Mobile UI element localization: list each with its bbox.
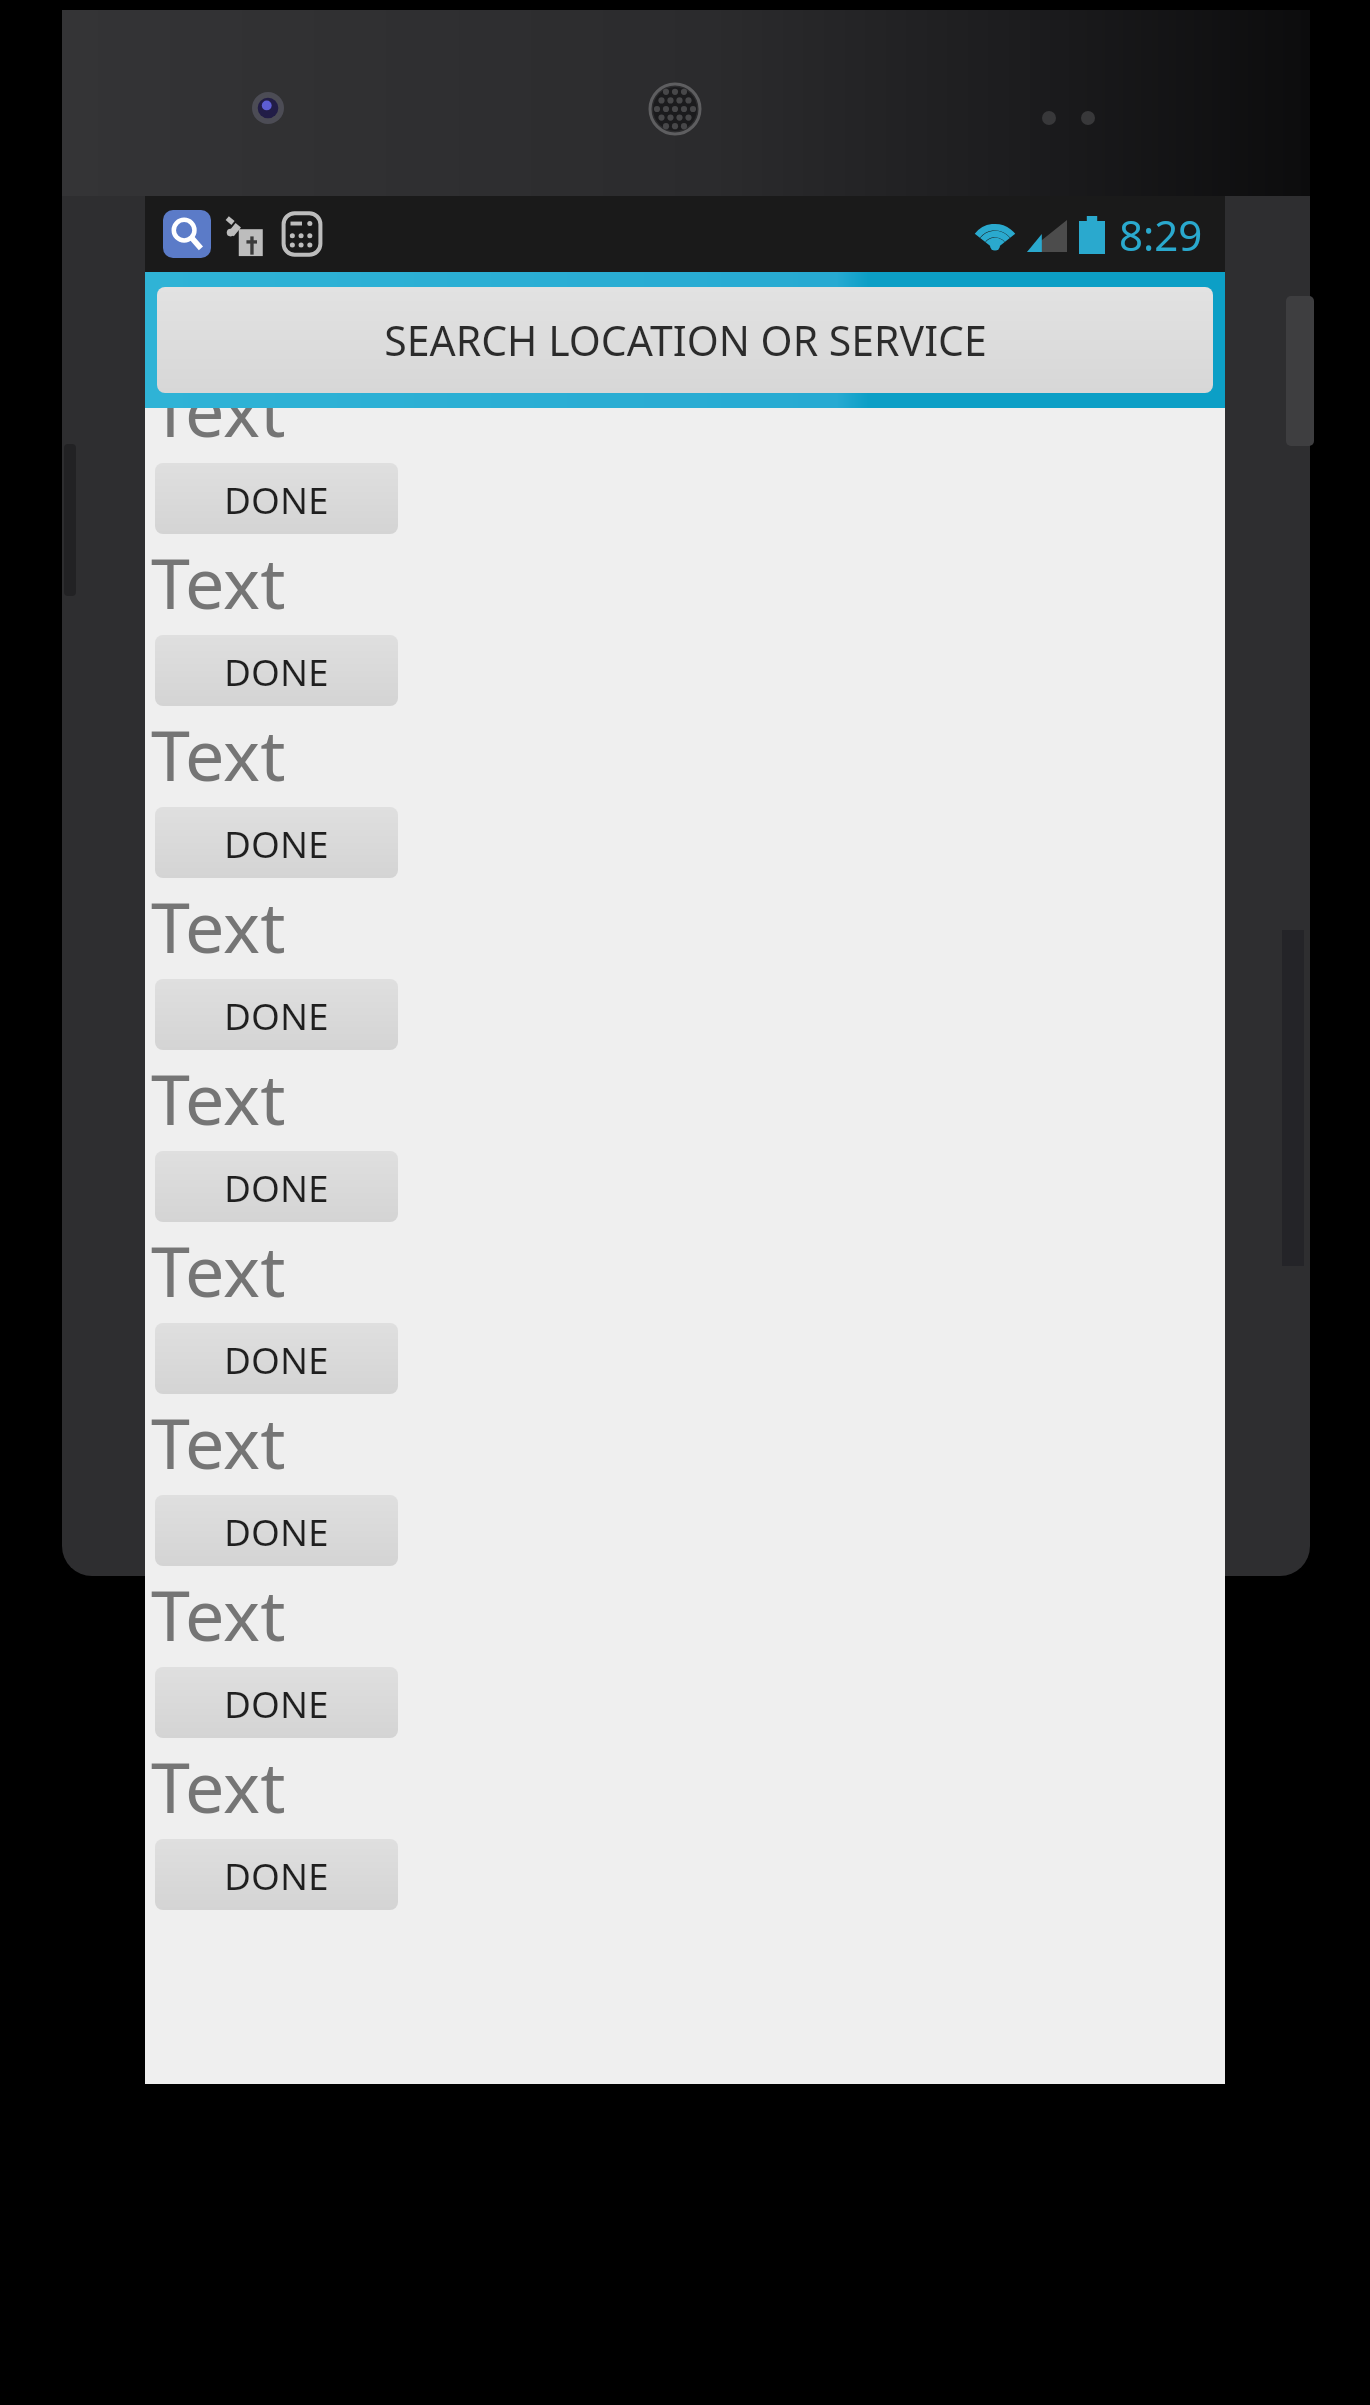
button[interactable]: DONE [155,635,398,706]
button[interactable]: DONE [155,1323,398,1394]
button[interactable]: Text [145,1394,1225,1566]
staticText: 8:29 [1119,206,1203,263]
button[interactable]: Text [145,706,1225,878]
button[interactable]: DONE [155,1151,398,1222]
staticText: Text [151,534,286,629]
button[interactable]: Search [163,210,211,258]
staticText: DONE [224,1506,329,1556]
staticText: DONE [224,1162,329,1212]
button[interactable]: DONE [155,1667,398,1738]
staticText: DONE [224,646,329,696]
button[interactable]: Text [145,1566,1225,1738]
staticText: DONE [224,818,329,868]
button[interactable]: Text [145,1222,1225,1394]
button[interactable]: Text [145,1738,1225,1910]
staticText: Text [151,408,286,457]
button[interactable]: Text [145,1050,1225,1222]
staticText: DONE [224,990,329,1040]
staticText: DONE [224,474,329,524]
button[interactable]: Text [145,878,1225,1050]
button[interactable]: DONE [155,807,398,878]
button[interactable]: DONE [155,979,398,1050]
staticText: DONE [224,1850,329,1900]
staticText: SEARCH LOCATION OR SERVICE [384,312,987,368]
staticText: DONE [224,1334,329,1384]
button[interactable]: SEARCH LOCATION OR SERVICE [157,287,1213,393]
button[interactable]: DONE [155,463,398,534]
staticText: Text [151,1222,286,1317]
button[interactable]: DONE [155,1839,398,1910]
staticText: Text [151,1394,286,1489]
staticText: Text [151,1738,286,1833]
staticText: Text [151,1050,286,1145]
staticText: Text [151,706,286,801]
staticText: Text [151,878,286,973]
staticText: Text [151,1566,286,1661]
button[interactable]: Text [145,408,1225,534]
button[interactable]: Text [145,534,1225,706]
button[interactable]: DONE [155,1495,398,1566]
staticText: DONE [224,1678,329,1728]
